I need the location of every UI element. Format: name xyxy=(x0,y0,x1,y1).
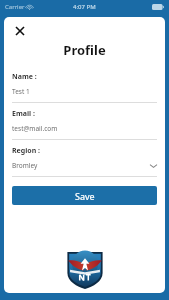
staticText: Profile xyxy=(4,41,165,59)
staticText: Email : xyxy=(12,109,35,119)
staticText: Test 1 xyxy=(12,87,157,96)
staticText: Name : xyxy=(12,72,37,82)
staticText: test@mail.com xyxy=(12,124,157,133)
button[interactable]: Save xyxy=(12,186,157,205)
button[interactable]: Close xyxy=(12,23,28,39)
staticText: Save xyxy=(75,190,95,202)
staticText: Bromley xyxy=(12,161,150,170)
button[interactable]: Region : xyxy=(4,146,165,170)
staticText: Carrier xyxy=(5,3,25,11)
staticText: Region : xyxy=(12,146,40,156)
staticText: 4:07 PM xyxy=(73,3,96,11)
